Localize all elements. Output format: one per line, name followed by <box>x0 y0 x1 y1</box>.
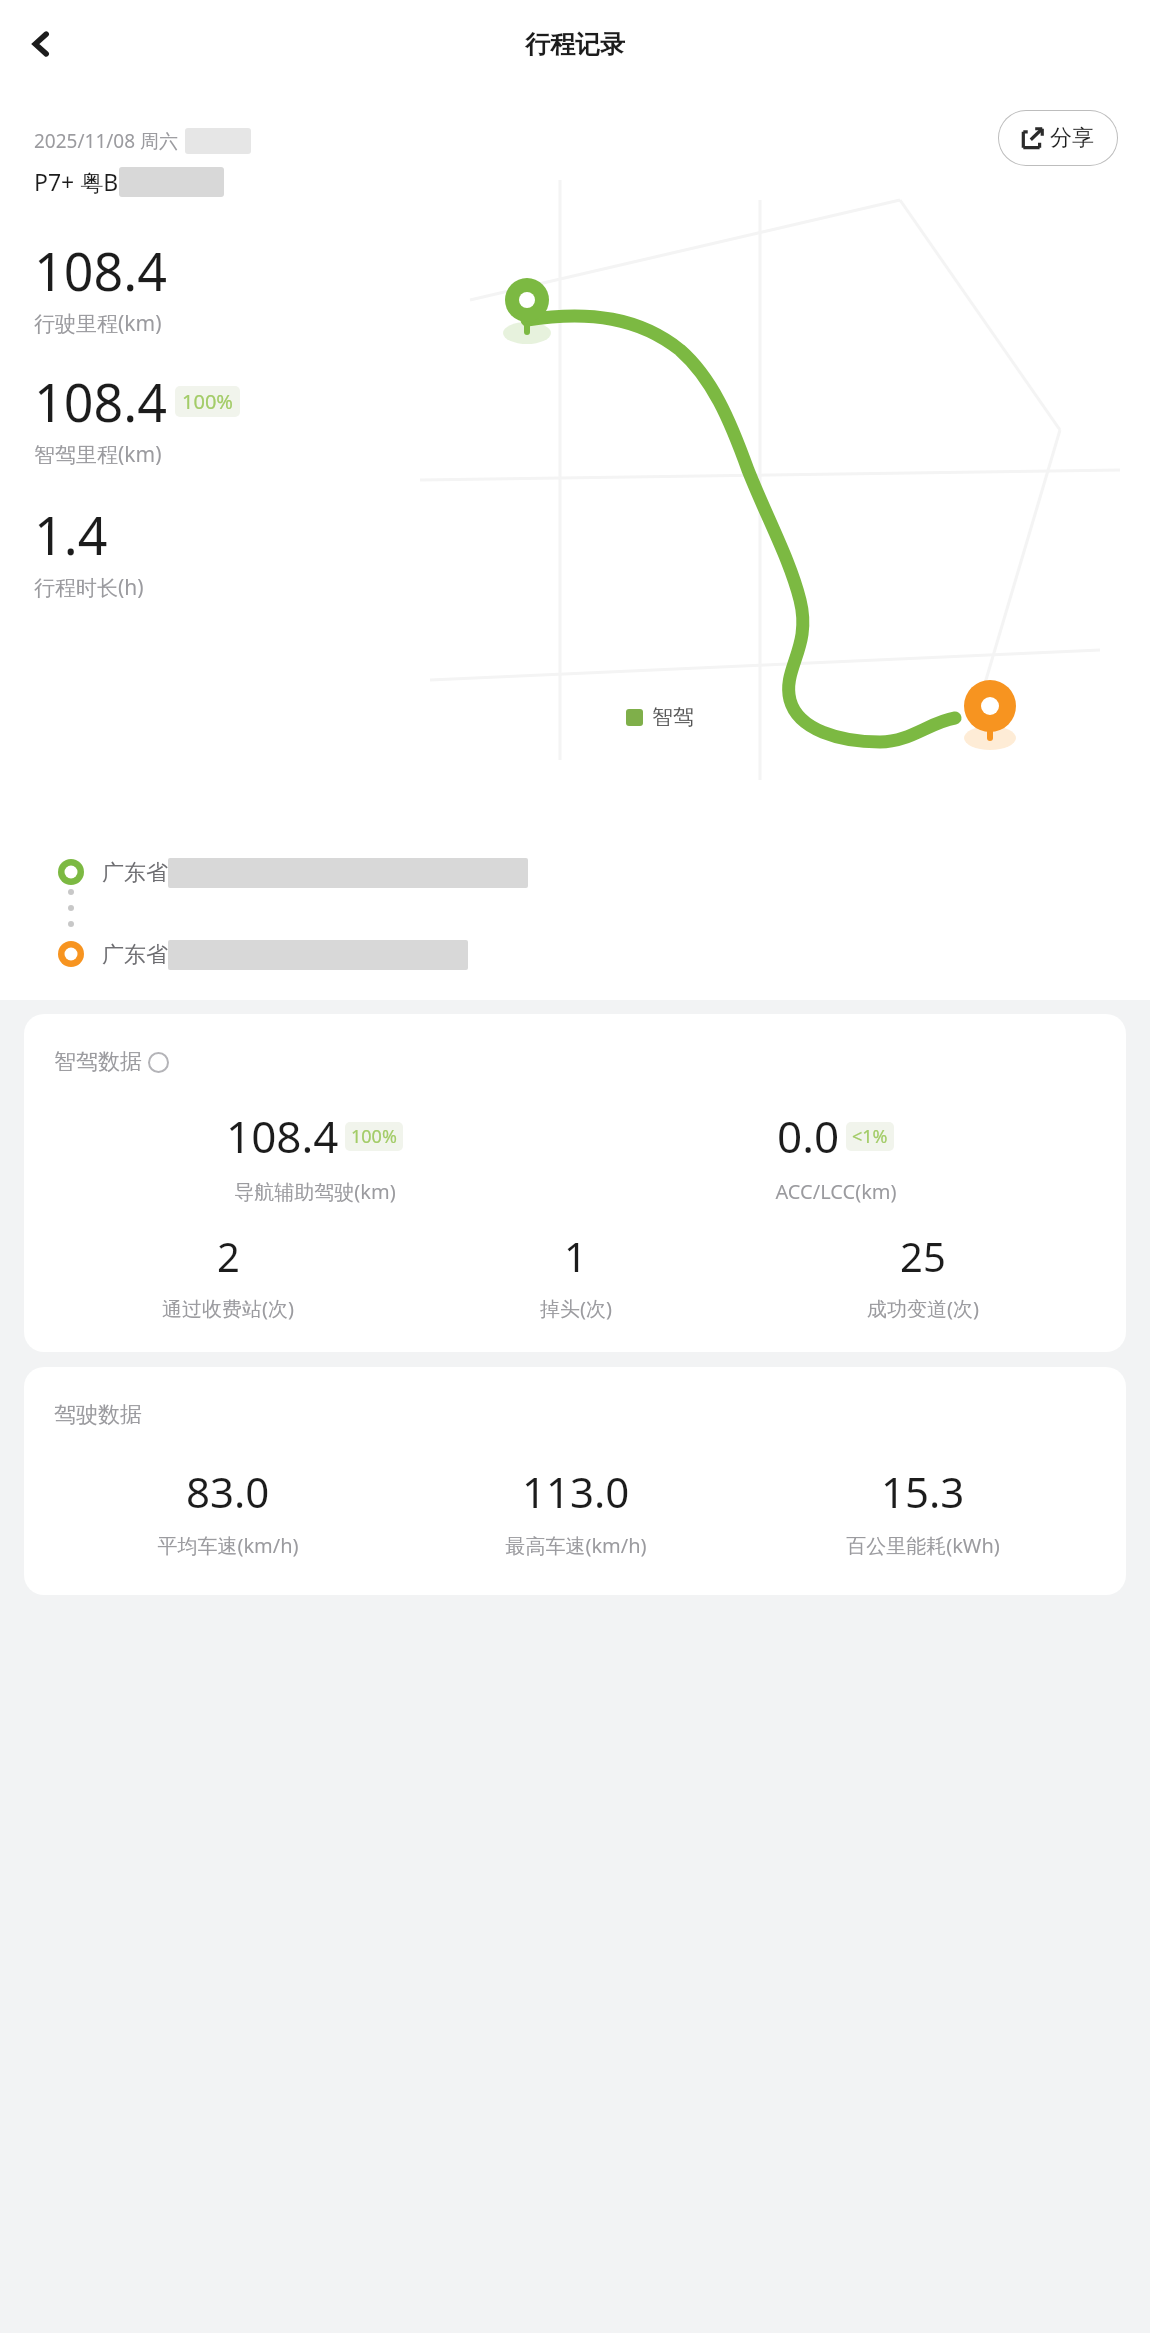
staticText: 0.0 <box>777 1106 840 1166</box>
staticText: 15.3 <box>881 1463 965 1520</box>
staticText: P7+ 粤B <box>34 166 119 197</box>
staticText: 行程记录 <box>525 29 625 60</box>
staticText: 行驶里程(km) <box>34 309 162 338</box>
staticText: 108.4 <box>226 1106 339 1166</box>
staticText: 驾驶数据 <box>54 1401 142 1429</box>
button[interactable]: 智驾数据 <box>24 1014 1126 1352</box>
button[interactable]: Back <box>14 17 68 71</box>
staticText: 掉头(次) <box>540 1295 612 1322</box>
staticText: 广东省 <box>102 941 168 969</box>
staticText: 智驾数据 <box>54 1048 142 1076</box>
staticText: 1 <box>564 1229 587 1283</box>
button[interactable]: 驾驶数据 <box>24 1367 1126 1595</box>
staticText: 2025/11/08 周六 <box>34 128 179 154</box>
staticText: 1.4 <box>34 499 108 570</box>
staticText: 广东省 <box>102 859 168 887</box>
staticText: 通过收费站(次) <box>162 1295 294 1322</box>
staticText: 100% <box>351 1124 397 1149</box>
staticText: 分享 <box>1050 124 1094 152</box>
staticText: <1% <box>852 1124 888 1149</box>
staticText: 108.4 <box>34 366 167 437</box>
button[interactable]: 分享 <box>998 110 1118 166</box>
staticText: 行程时长(h) <box>34 573 144 602</box>
staticText: 113.0 <box>522 1463 630 1520</box>
staticText: 成功变道(次) <box>867 1295 979 1322</box>
staticText: 2 <box>217 1229 240 1283</box>
staticText: 100% <box>182 388 233 415</box>
staticText: 百公里能耗(kWh) <box>846 1532 1000 1559</box>
staticText: 平均车速(km/h) <box>157 1532 299 1559</box>
staticText: 83.0 <box>186 1463 270 1520</box>
staticText: 智驾 <box>652 704 694 730</box>
staticText: 最高车速(km/h) <box>505 1532 647 1559</box>
staticText: 导航辅助驾驶(km) <box>234 1178 396 1205</box>
staticText: ACC/LCC(km) <box>775 1178 897 1205</box>
staticText: 智驾里程(km) <box>34 440 162 469</box>
staticText: 25 <box>900 1229 946 1283</box>
staticText: 108.4 <box>34 235 167 306</box>
